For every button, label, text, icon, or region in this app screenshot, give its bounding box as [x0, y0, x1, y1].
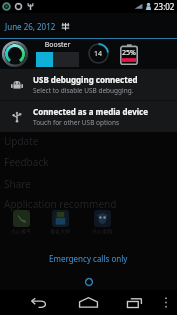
- staticText: Update: [4, 134, 39, 148]
- staticText: June 26, 2012: [5, 21, 56, 32]
- staticText: Select to disable USB debugging.: [33, 86, 134, 95]
- button[interactable]: Feedback: [0, 152, 177, 172]
- staticText: Touch for other USB options: [33, 118, 120, 127]
- staticText: 优化大师: [50, 228, 70, 234]
- button[interactable]: 点心拨号: [11, 210, 31, 234]
- staticText: Feedback: [4, 155, 49, 169]
- button[interactable]: Connected as a media device: [0, 101, 177, 132]
- button[interactable]: USB debugging connected: [0, 69, 177, 100]
- button[interactable]: Application recommend: [0, 194, 177, 214]
- button[interactable]: 点心桌面: [92, 210, 112, 234]
- button[interactable]: Booster: [2, 41, 28, 67]
- button[interactable]: 优化大师: [50, 210, 70, 234]
- button[interactable]: Recents: [117, 290, 151, 315]
- button[interactable]: Back: [20, 290, 56, 315]
- button[interactable]: Home: [70, 290, 106, 315]
- button[interactable]: Booster: [36, 40, 79, 67]
- button[interactable]: Share: [0, 174, 177, 194]
- staticText: USB debugging connected: [33, 74, 138, 85]
- staticText: Connected as a media device: [33, 106, 149, 117]
- staticText: 点心拨号: [11, 228, 31, 234]
- staticText: 点心桌面: [92, 228, 112, 234]
- staticText: Application recommend: [4, 197, 117, 211]
- staticText: Emergency calls only: [49, 253, 128, 264]
- staticText: 25%: [122, 48, 136, 58]
- button[interactable]: Menu: [155, 290, 177, 315]
- button[interactable]: Battery: [120, 42, 138, 65]
- button[interactable]: Update: [0, 131, 177, 151]
- staticText: Booster: [36, 40, 79, 50]
- staticText: Share: [4, 177, 31, 191]
- button[interactable]: Temperature: [88, 43, 109, 64]
- staticText: 14: [94, 49, 103, 59]
- staticText: 23:02: [154, 1, 175, 12]
